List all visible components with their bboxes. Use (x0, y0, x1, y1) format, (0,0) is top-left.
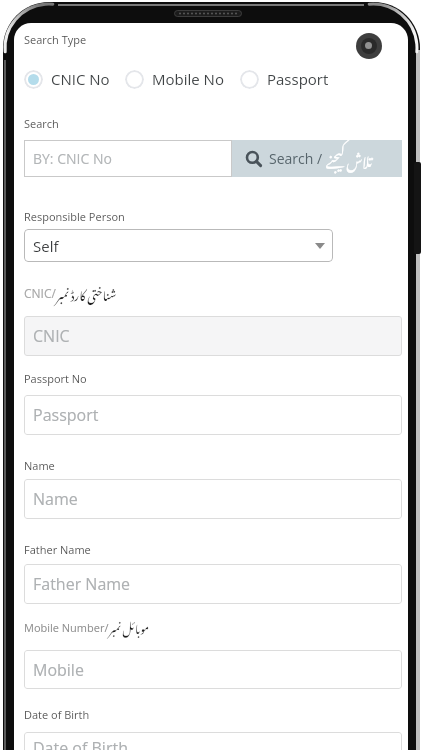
button[interactable]: BY: CNIC No (24, 140, 232, 177)
staticText: Mobile (33, 659, 84, 681)
button[interactable]: Mobile (24, 650, 402, 689)
staticText: Passport (267, 69, 329, 89)
button[interactable]: CNIC (24, 316, 402, 356)
staticText: Name (33, 488, 78, 510)
staticText: Search / (269, 149, 326, 168)
staticText: Search (24, 116, 59, 131)
staticText: Responsible Person (24, 209, 125, 224)
staticText: Name (24, 458, 55, 473)
staticText: Self (33, 236, 59, 256)
button[interactable]: Passport (24, 395, 402, 435)
button[interactable]: Passport (240, 69, 329, 89)
staticText: CNIC (33, 325, 70, 347)
staticText: CNIC No (51, 69, 110, 89)
button[interactable]: CNIC No (24, 69, 110, 89)
staticText: Date of Birth (24, 707, 90, 722)
staticText: Mobile Number/ (24, 620, 109, 635)
staticText: موبائل نمبر (109, 613, 150, 641)
staticText: Father Name (33, 573, 131, 595)
button[interactable]: Father Name (24, 564, 402, 604)
staticText: Date of Birth (33, 737, 128, 750)
staticText: CNIC/ (24, 285, 56, 301)
staticText: Father Name (24, 542, 91, 557)
staticText: Mobile No (152, 69, 224, 89)
button[interactable]: Name (24, 479, 402, 519)
button[interactable]: Self (24, 229, 333, 262)
staticText: Passport (33, 404, 99, 426)
staticText: Search Type (24, 32, 87, 47)
button[interactable]: Date of Birth (24, 732, 402, 750)
staticText: تلاش کیجنے (326, 141, 373, 176)
button[interactable]: Search / (232, 140, 402, 177)
button[interactable]: Mobile No (125, 69, 224, 89)
staticText: BY: CNIC No (33, 149, 112, 168)
staticText: شناختی کارڈ نمبر (56, 278, 117, 308)
staticText: Passport No (24, 371, 87, 386)
